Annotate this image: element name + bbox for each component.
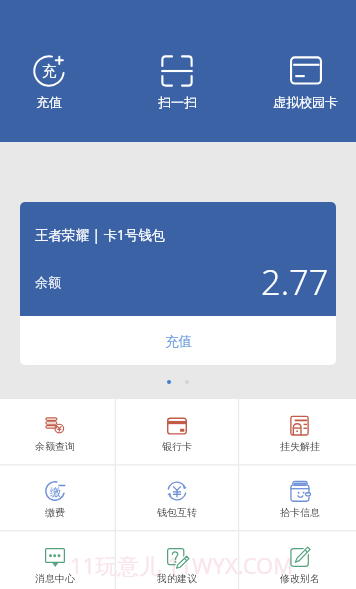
- staticText: 我的建议: [157, 572, 197, 585]
- button[interactable]: 挂失解挂: [244, 399, 356, 453]
- staticText: 扫一扫: [158, 94, 197, 110]
- staticText: 缴: [50, 485, 61, 499]
- button[interactable]: 充值: [0, 55, 98, 110]
- staticText: 充: [42, 62, 57, 80]
- button[interactable]: 消息中心: [0, 531, 109, 585]
- staticText: 11玩意儿 11WYX.COM: [70, 550, 294, 580]
- staticText: 拾卡信息: [280, 506, 320, 519]
- button[interactable]: 我的建议: [109, 531, 244, 585]
- staticText: 王者荣耀 | 卡1号钱包: [35, 226, 166, 244]
- other: 虚拟校园卡: [289, 55, 321, 87]
- staticText: 消息中心: [35, 572, 75, 585]
- staticText: 银行卡: [162, 440, 192, 453]
- button[interactable]: 钱包互转: [109, 465, 244, 519]
- staticText: 充值: [36, 94, 62, 110]
- button[interactable]: 扫一扫: [128, 55, 226, 110]
- staticText: 余额: [35, 274, 61, 290]
- staticText: 修改别名: [280, 572, 320, 585]
- staticText: 2.77: [261, 258, 329, 305]
- staticText: 缴费: [45, 506, 65, 519]
- button[interactable]: 充值: [20, 316, 336, 365]
- button[interactable]: 修改别名: [244, 531, 356, 585]
- staticText: 余额查询: [35, 440, 75, 453]
- staticText: 挂失解挂: [280, 440, 320, 453]
- button[interactable]: 拾卡信息: [244, 465, 356, 519]
- button[interactable]: 银行卡: [109, 399, 244, 453]
- button[interactable]: 余额查询: [0, 399, 109, 453]
- staticText: 充值: [165, 333, 192, 350]
- staticText: 钱包互转: [157, 506, 197, 519]
- staticText: 虚拟校园卡: [273, 94, 338, 110]
- button[interactable]: 虚拟校园卡: [256, 55, 354, 110]
- button[interactable]: 缴: [0, 465, 109, 519]
